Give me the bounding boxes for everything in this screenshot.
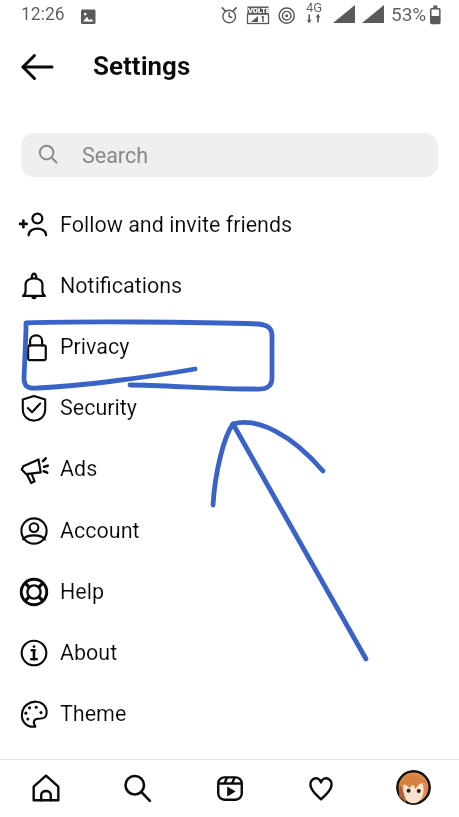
staticText: 12:26 bbox=[21, 4, 65, 25]
button[interactable]: Security bbox=[0, 377, 459, 438]
staticText: Theme bbox=[60, 701, 127, 726]
staticText: 4G bbox=[306, 0, 323, 15]
staticText: Security bbox=[60, 395, 137, 420]
button[interactable]: Follow and invite friends bbox=[0, 194, 459, 255]
staticText: Notifications bbox=[60, 273, 183, 298]
button[interactable]: Profile bbox=[396, 770, 431, 805]
staticText: Account bbox=[60, 518, 140, 543]
button[interactable]: Notifications bbox=[0, 255, 459, 316]
staticText: VOLTE bbox=[248, 6, 271, 15]
button[interactable]: Search bbox=[123, 762, 151, 790]
staticText: Search bbox=[82, 143, 149, 168]
button[interactable]: Ads bbox=[0, 438, 459, 499]
staticText: Follow and invite friends bbox=[60, 212, 293, 237]
staticText: Ads bbox=[60, 456, 98, 481]
button[interactable]: Theme bbox=[0, 683, 459, 744]
staticText: About bbox=[60, 640, 118, 665]
button[interactable]: Home bbox=[32, 762, 60, 790]
staticText: Help bbox=[60, 579, 105, 604]
button[interactable]: Reels bbox=[216, 762, 244, 790]
button[interactable]: Likes bbox=[307, 762, 335, 790]
button[interactable]: Back bbox=[14, 44, 60, 90]
button[interactable]: Search bbox=[21, 133, 438, 177]
staticText: Settings bbox=[93, 51, 191, 81]
staticText: Privacy bbox=[60, 334, 130, 359]
button[interactable]: Privacy bbox=[0, 316, 459, 377]
button[interactable]: Help bbox=[0, 561, 459, 622]
button[interactable]: Account bbox=[0, 500, 459, 561]
button[interactable]: About bbox=[0, 622, 459, 683]
staticText: 53% bbox=[391, 3, 427, 25]
